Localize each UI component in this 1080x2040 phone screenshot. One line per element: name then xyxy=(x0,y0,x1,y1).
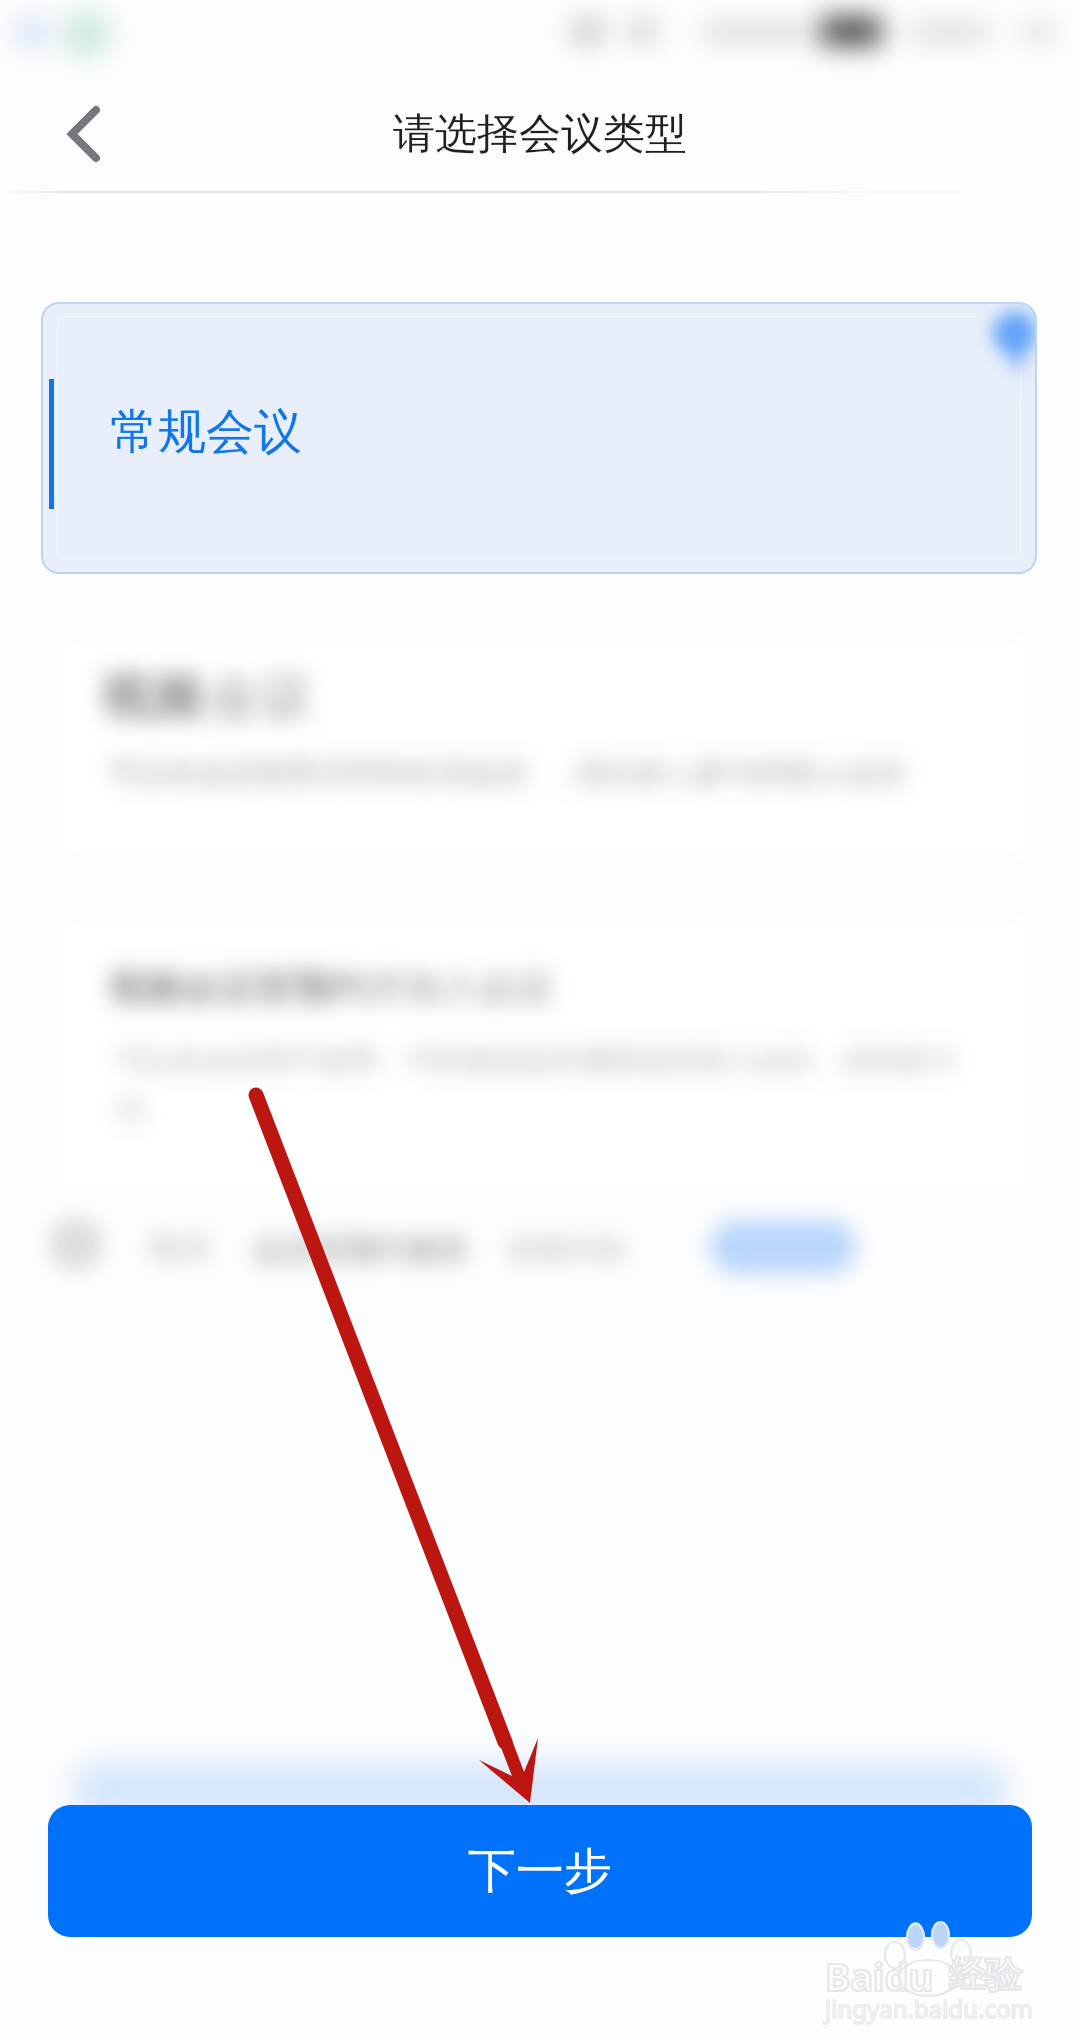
staticText: 会议室预约服务 xyxy=(253,1230,470,1269)
staticText: 查看详情 xyxy=(508,1232,624,1269)
staticText: 取消 xyxy=(150,1230,208,1267)
staticText: 常规会议 xyxy=(110,402,302,462)
button[interactable]: Back xyxy=(42,92,126,176)
staticText: jingyan.baidu.com xyxy=(825,1992,1033,2025)
button[interactable]: 常规会议 xyxy=(41,302,1037,574)
staticText: 下一步 xyxy=(468,1841,612,1901)
staticText: 会议 xyxy=(208,664,312,730)
staticText: 经验 xyxy=(949,1952,1021,1997)
staticText: ，适合多人参与的线上会议 xyxy=(546,754,906,792)
button[interactable]: 下一步 xyxy=(48,1805,1032,1937)
staticText: Baidu xyxy=(825,1950,934,2002)
staticText: 可以在会议室中使用，可快速发起并邀请成员加入会议，支持多方 式 xyxy=(116,1042,957,1129)
staticText: 并加入会议 xyxy=(368,964,553,1011)
staticText: 视频会议室预约 xyxy=(108,964,367,1011)
staticText: 视频 xyxy=(100,664,204,730)
staticText: 请选择会议类型 xyxy=(393,108,687,161)
staticText: 可以在会议室里召开的全员会议 xyxy=(108,754,528,792)
